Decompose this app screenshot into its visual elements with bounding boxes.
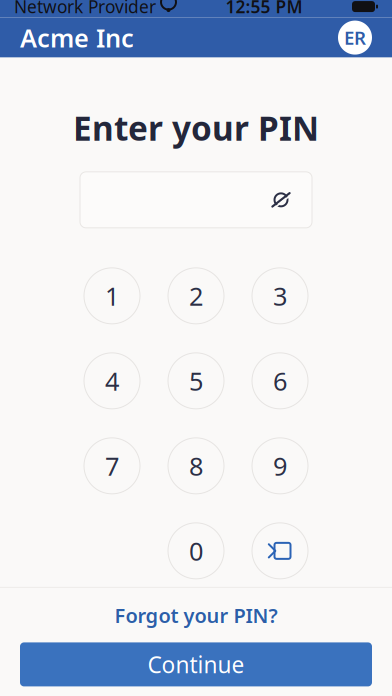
staticText: 3 xyxy=(273,279,287,313)
staticText: 12:55 PM xyxy=(225,0,302,18)
button[interactable]: 4 xyxy=(84,353,140,409)
button[interactable]: 3 xyxy=(252,268,308,324)
button[interactable]: 8 xyxy=(168,438,224,494)
staticText: Enter your PIN xyxy=(73,106,319,150)
staticText: 4 xyxy=(105,364,119,398)
staticText: 7 xyxy=(105,449,119,483)
staticText: 9 xyxy=(273,449,287,483)
button[interactable]: 9 xyxy=(252,438,308,494)
button[interactable]: 6 xyxy=(252,353,308,409)
button[interactable]: Continue xyxy=(20,642,372,686)
staticText: 8 xyxy=(189,449,203,483)
button[interactable]: 0 xyxy=(168,523,224,579)
staticText: 0 xyxy=(189,534,203,568)
button[interactable]: 1 xyxy=(84,268,140,324)
staticText: 6 xyxy=(273,364,287,398)
button[interactable]: Delete xyxy=(252,523,308,579)
button[interactable]: 2 xyxy=(168,268,224,324)
staticText: ER xyxy=(344,25,366,50)
button[interactable]: Forgot your PIN? xyxy=(0,588,392,642)
button[interactable]: Profile xyxy=(338,21,372,55)
staticText xyxy=(156,0,161,18)
staticText: 1 xyxy=(105,279,119,313)
staticText: 5 xyxy=(189,364,203,398)
staticText: Network Provider xyxy=(14,0,156,18)
button[interactable]: 5 xyxy=(168,353,224,409)
staticText: Forgot your PIN? xyxy=(114,602,277,628)
staticText: Continue xyxy=(147,649,244,679)
button[interactable]: 7 xyxy=(84,438,140,494)
staticText: 2 xyxy=(189,279,203,313)
staticText: Acme Inc xyxy=(20,21,134,54)
